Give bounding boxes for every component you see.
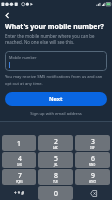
staticText: 8 — [54, 171, 58, 180]
staticText: ABC — [53, 146, 58, 150]
button[interactable]: 0 — [38, 186, 73, 200]
staticText: JKL — [54, 163, 58, 167]
staticText: 1 — [17, 139, 21, 148]
staticText: GHI — [17, 163, 22, 167]
button[interactable]: 8 — [38, 169, 73, 185]
staticText: 0 — [54, 189, 58, 198]
staticText: 5 — [54, 154, 58, 163]
button[interactable]: Next — [5, 92, 107, 106]
staticText: 6 — [91, 154, 95, 163]
staticText: Sign up with email address — [30, 111, 82, 117]
button[interactable]: 3 — [75, 135, 110, 151]
button[interactable]: + * # — [2, 186, 36, 200]
staticText: MNO — [89, 163, 96, 167]
button[interactable]: Mobile number — [5, 51, 107, 71]
button[interactable]: 5 — [38, 152, 73, 168]
button[interactable]: Sign up with email address — [5, 111, 107, 117]
staticText: 7 — [18, 171, 22, 180]
button[interactable]: 1 — [2, 135, 36, 151]
staticText: Enter the mobile number where you can be… — [5, 33, 107, 45]
staticText: Next — [49, 95, 63, 103]
button[interactable]: 7 — [2, 169, 36, 185]
button[interactable]: Back — [1, 9, 14, 22]
staticText: DEF — [90, 146, 95, 150]
staticText: What's your mobile number? — [5, 22, 104, 31]
button[interactable]: 4 — [2, 152, 36, 168]
button[interactable]: 9 — [75, 169, 110, 185]
staticText: TUV — [53, 180, 58, 184]
button[interactable]: Backspace — [75, 186, 110, 200]
button[interactable]: 2 — [38, 135, 73, 151]
staticText: 4 — [18, 154, 22, 163]
button[interactable]: 6 — [75, 152, 110, 168]
staticText: PQRS — [16, 180, 23, 184]
staticText: You may receive SMS notifications from u… — [5, 74, 107, 86]
staticText: 3 — [91, 137, 95, 146]
staticText: + * # — [14, 190, 25, 196]
staticText: 2 — [54, 137, 58, 146]
staticText: 9 — [91, 171, 95, 180]
staticText: Mobile number — [9, 55, 37, 60]
staticText: WXYZ — [89, 180, 96, 184]
